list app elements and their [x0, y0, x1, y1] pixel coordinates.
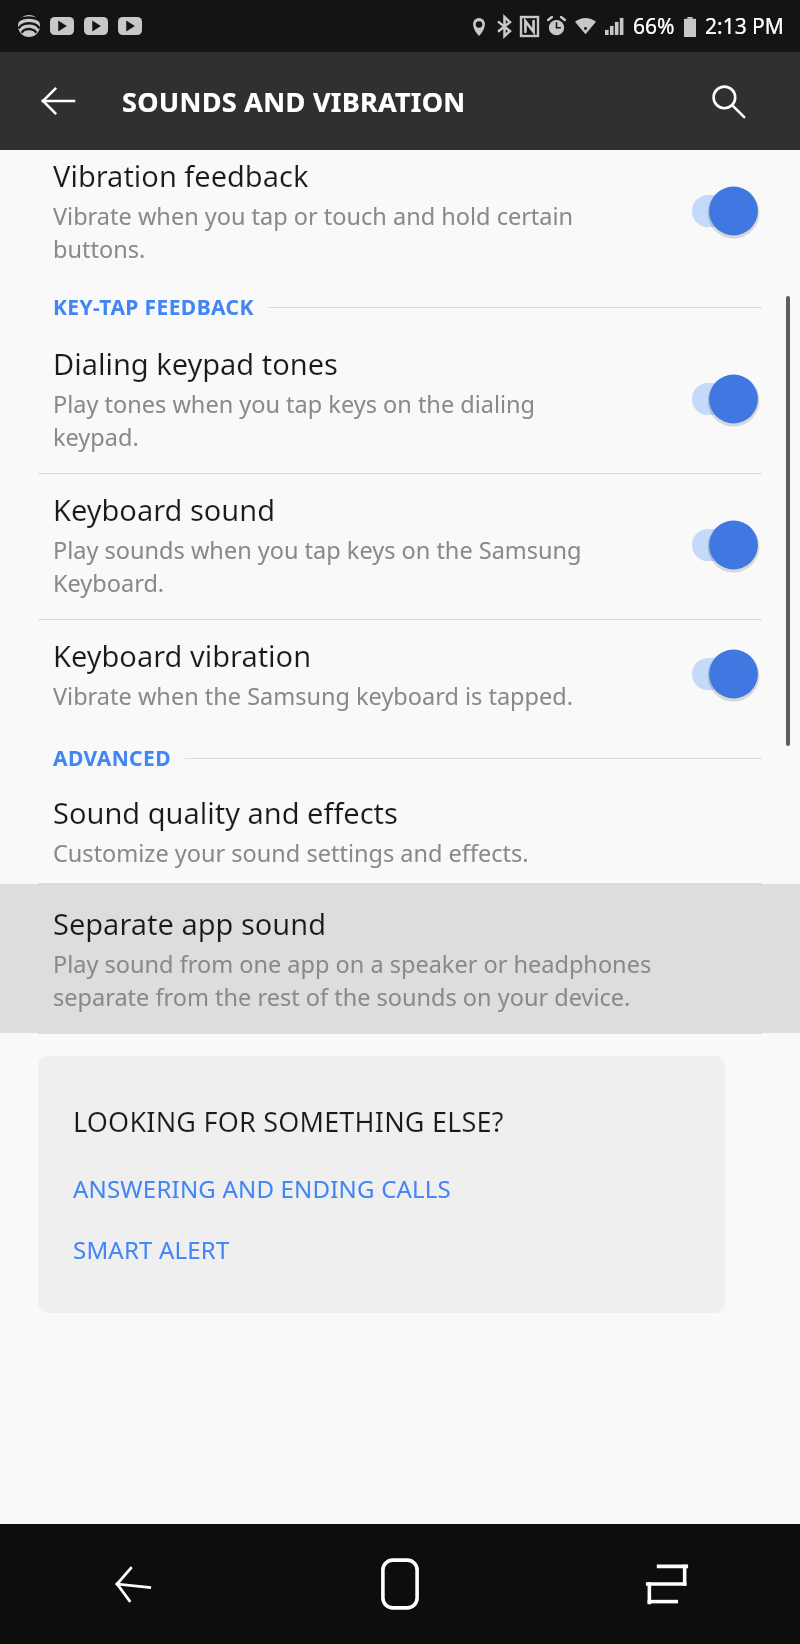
staticText: Vibration feedback — [53, 156, 309, 195]
button[interactable]: Toggle Dialing keypad tones — [692, 373, 770, 425]
staticText: ANSWERING AND ENDING CALLS — [73, 1172, 451, 1205]
button[interactable]: Toggle Vibration feedback — [692, 185, 770, 237]
button[interactable]: Toggle Keyboard sound — [692, 519, 770, 571]
button[interactable]: Home — [266, 1524, 533, 1644]
button[interactable]: Toggle Keyboard vibration — [692, 648, 770, 700]
staticText: SMART ALERT — [73, 1233, 230, 1266]
button[interactable]: Separate app sound — [0, 884, 800, 1033]
staticText: Separate app sound — [53, 904, 327, 943]
staticText: Dialing keypad tones — [53, 344, 338, 383]
staticText: Keyboard vibration — [53, 636, 312, 675]
staticText: Customize your sound settings and effect… — [53, 837, 529, 869]
button[interactable]: Vibration feedback — [0, 150, 800, 283]
staticText: Vibrate when the Samsung keyboard is tap… — [53, 680, 574, 712]
staticText: SOUNDS AND VIBRATION — [122, 83, 466, 120]
staticText: KEY-TAP FEEDBACK — [53, 293, 254, 322]
button[interactable]: Back — [0, 1524, 266, 1644]
button[interactable]: ANSWERING AND ENDING CALLS — [73, 1172, 704, 1205]
button[interactable]: Back — [24, 67, 92, 135]
staticText: Play sound from one app on a speaker or … — [53, 948, 652, 1013]
staticText: Vibrate when you tap or touch and hold c… — [53, 200, 574, 265]
staticText: ADVANCED — [53, 744, 171, 773]
button[interactable]: Search — [696, 69, 760, 133]
staticText: 66% — [633, 12, 675, 41]
staticText: LOOKING FOR SOMETHING ELSE? — [73, 1103, 504, 1140]
button[interactable]: Keyboard sound — [0, 474, 800, 619]
button[interactable]: SMART ALERT — [73, 1233, 704, 1266]
staticText: Sound quality and effects — [53, 793, 398, 832]
button[interactable]: Keyboard vibration — [0, 620, 800, 734]
staticText: 2:13 PM — [705, 12, 784, 41]
button[interactable]: Recent apps — [533, 1524, 800, 1644]
button[interactable]: Dialing keypad tones — [0, 328, 800, 473]
button[interactable]: Sound quality and effects — [0, 779, 800, 883]
staticText: Play tones when you tap keys on the dial… — [53, 388, 536, 453]
staticText: Play sounds when you tap keys on the Sam… — [53, 534, 582, 599]
staticText: Keyboard sound — [53, 490, 276, 529]
